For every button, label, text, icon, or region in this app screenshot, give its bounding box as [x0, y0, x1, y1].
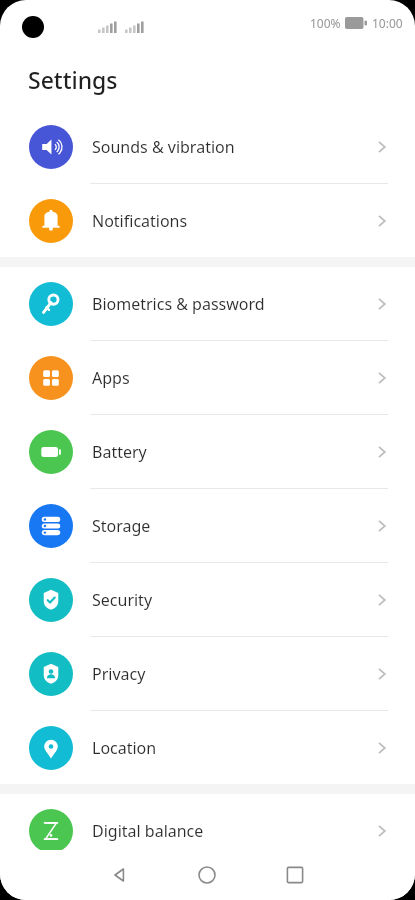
staticText: Storage: [92, 515, 373, 537]
button[interactable]: Security: [0, 563, 415, 636]
button[interactable]: Location: [0, 711, 415, 784]
button[interactable]: Apps: [0, 341, 415, 414]
staticText: Settings: [28, 64, 118, 95]
button[interactable]: Battery: [0, 415, 415, 488]
button[interactable]: Back: [99, 855, 139, 895]
staticText: 10:00: [372, 15, 403, 31]
staticText: Security: [92, 589, 373, 611]
staticText: Notifications: [92, 210, 373, 232]
button[interactable]: Digital balance: [0, 794, 415, 867]
button[interactable]: Home: [187, 855, 227, 895]
staticText: Apps: [92, 367, 373, 389]
button[interactable]: Storage: [0, 489, 415, 562]
button[interactable]: Notifications: [0, 184, 415, 257]
staticText: Digital balance: [92, 820, 373, 842]
staticText: Sounds & vibration: [92, 136, 373, 158]
staticText: 100%: [310, 15, 341, 31]
button[interactable]: Recent apps: [275, 855, 315, 895]
staticText: Privacy: [92, 663, 373, 685]
staticText: Battery: [92, 441, 373, 463]
staticText: Biometrics & password: [92, 293, 373, 315]
button[interactable]: Privacy: [0, 637, 415, 710]
button[interactable]: Sounds & vibration: [0, 110, 415, 183]
button[interactable]: Biometrics & password: [0, 267, 415, 340]
staticText: Location: [92, 737, 373, 759]
